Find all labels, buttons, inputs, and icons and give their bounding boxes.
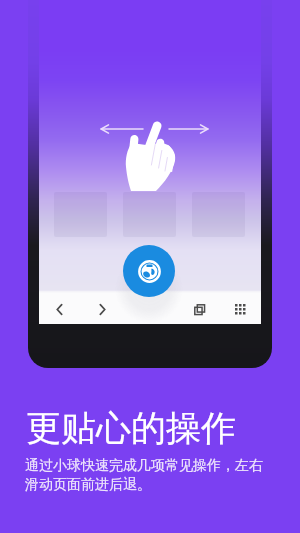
button[interactable]: Tabs	[185, 295, 213, 323]
staticText: 更贴心的操作	[26, 406, 236, 450]
button[interactable]: Forward	[88, 295, 116, 323]
button[interactable]: Back	[45, 295, 73, 323]
button[interactable]: Quick ball	[123, 245, 175, 297]
staticText: 通过小球快速完成几项常见操作，左右 滑动页面前进后退。	[25, 457, 263, 493]
button[interactable]: Menu	[226, 295, 254, 323]
